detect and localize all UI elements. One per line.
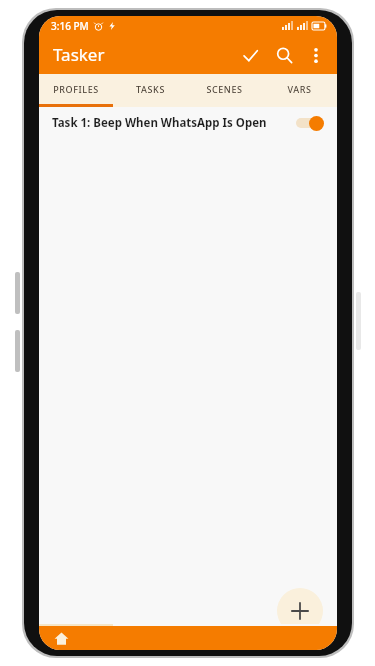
staticText: PROFILES xyxy=(53,83,99,95)
button[interactable]: Home xyxy=(49,626,73,650)
staticText: Tasker xyxy=(53,43,105,66)
button[interactable]: PROFILES xyxy=(39,74,113,104)
button[interactable]: Search xyxy=(267,38,301,72)
staticText: Task 1: Beep When WhatsApp Is Open xyxy=(52,115,286,131)
button[interactable]: SCENES xyxy=(187,74,262,104)
staticText: TASKS xyxy=(136,83,165,95)
button[interactable]: Apply xyxy=(233,38,267,72)
button[interactable]: Add profile xyxy=(277,588,323,634)
staticText: VARS xyxy=(287,83,312,95)
button[interactable]: Toggle profile xyxy=(294,115,324,131)
button[interactable]: TASKS xyxy=(113,74,187,104)
staticText: SCENES xyxy=(206,83,243,95)
staticText: 3:16 PM xyxy=(51,19,89,33)
button[interactable]: VARS xyxy=(262,74,337,104)
button[interactable]: More options xyxy=(301,40,331,70)
button[interactable]: Task 1: Beep When WhatsApp Is Open xyxy=(39,107,337,138)
